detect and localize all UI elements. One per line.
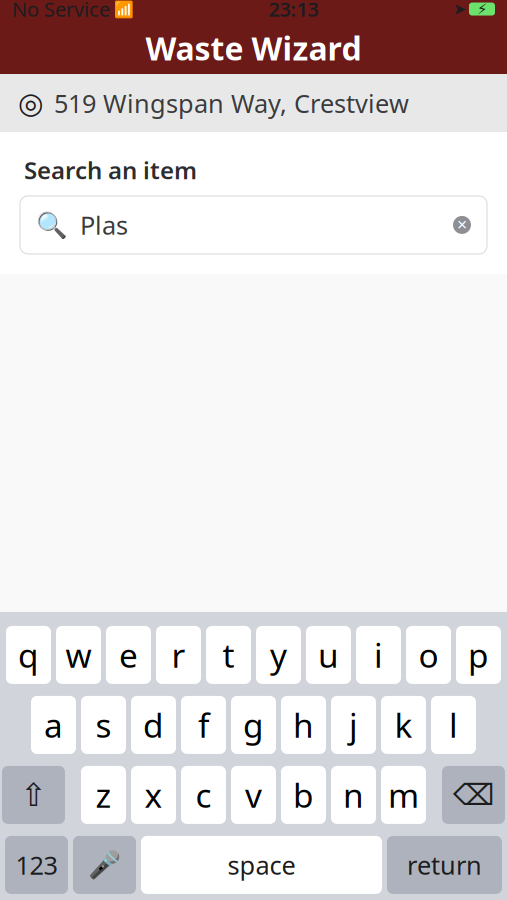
button[interactable]: m <box>381 766 426 824</box>
button[interactable]: w <box>56 626 101 684</box>
button[interactable]: 🔍 <box>20 196 487 254</box>
button[interactable]: a <box>31 696 76 754</box>
button[interactable]: s <box>81 696 126 754</box>
staticText: i <box>374 633 383 677</box>
button[interactable]: h <box>281 696 326 754</box>
staticText: return <box>407 848 482 882</box>
button[interactable]: k <box>381 696 426 754</box>
button[interactable]: e <box>106 626 151 684</box>
staticText: g <box>243 703 264 747</box>
button[interactable]: Dictate <box>73 836 136 894</box>
staticText: y <box>270 633 287 677</box>
staticText: ✕ <box>456 217 467 232</box>
button[interactable]: p <box>456 626 501 684</box>
button[interactable]: z <box>81 766 126 824</box>
staticText: ⌫ <box>453 778 494 812</box>
button[interactable]: l <box>431 696 476 754</box>
button[interactable]: 123 <box>5 836 68 894</box>
staticText: p <box>468 633 489 677</box>
button[interactable]: y <box>256 626 301 684</box>
staticText: v <box>245 773 262 817</box>
button[interactable]: t <box>206 626 251 684</box>
button[interactable]: x <box>131 766 176 824</box>
button[interactable]: return <box>387 836 502 894</box>
staticText: m <box>388 773 419 817</box>
button[interactable]: j <box>331 696 376 754</box>
button[interactable]: Delete <box>442 766 505 824</box>
button[interactable]: r <box>156 626 201 684</box>
staticText: 519 Wingspan Way, Crestview <box>54 86 409 120</box>
staticText: l <box>449 703 458 747</box>
button[interactable]: space <box>141 836 382 894</box>
staticText: z <box>95 773 111 817</box>
staticText: x <box>144 773 162 817</box>
button[interactable]: n <box>331 766 376 824</box>
button[interactable]: b <box>281 766 326 824</box>
staticText: Waste Wizard <box>145 27 361 69</box>
staticText: 123 <box>15 848 57 882</box>
staticText: ⇧ <box>20 777 47 813</box>
staticText: r <box>171 633 185 677</box>
staticText: n <box>343 773 364 817</box>
staticText: Search an item <box>24 154 197 186</box>
button[interactable]: q <box>6 626 51 684</box>
button[interactable]: v <box>231 766 276 824</box>
staticText: 🎤 <box>88 850 121 880</box>
button[interactable]: f <box>181 696 226 754</box>
staticText: j <box>349 703 358 747</box>
staticText: b <box>293 773 314 817</box>
staticText: ◎ <box>18 86 44 120</box>
button[interactable]: i <box>356 626 401 684</box>
button[interactable]: o <box>406 626 451 684</box>
staticText: 📶 <box>110 0 134 20</box>
staticText: f <box>198 703 209 747</box>
button[interactable]: d <box>131 696 176 754</box>
staticText: q <box>18 633 39 677</box>
staticText: space <box>227 848 295 882</box>
staticText: k <box>394 703 412 747</box>
button[interactable]: c <box>181 766 226 824</box>
staticText: ➤ <box>453 0 466 18</box>
staticText: c <box>195 773 211 817</box>
staticText: 23:13 <box>268 0 318 22</box>
staticText: 🔍 <box>36 210 68 239</box>
staticText: w <box>65 633 91 677</box>
staticText: o <box>418 633 438 677</box>
staticText: ⚡︎ <box>477 1 487 17</box>
staticText: a <box>44 703 63 747</box>
staticText: e <box>119 633 138 677</box>
staticText: s <box>95 703 111 747</box>
staticText: t <box>222 633 234 677</box>
staticText: h <box>293 703 314 747</box>
button[interactable]: u <box>306 626 351 684</box>
staticText: u <box>318 633 339 677</box>
button[interactable]: g <box>231 696 276 754</box>
staticText: No Service <box>12 0 110 22</box>
button[interactable]: Shift <box>2 766 65 824</box>
staticText: d <box>143 703 164 747</box>
staticText: Plas <box>80 208 128 242</box>
